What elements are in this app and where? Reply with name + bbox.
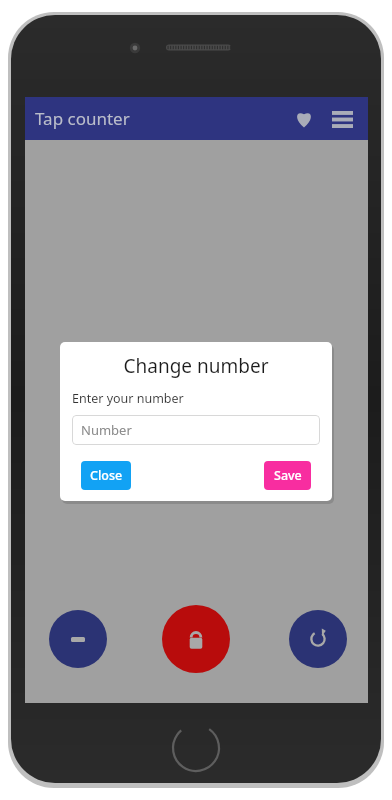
button[interactable]: Save bbox=[264, 461, 311, 490]
button[interactable]: Menu bbox=[324, 101, 360, 137]
button[interactable]: Reset bbox=[289, 610, 347, 668]
staticText: Enter your number bbox=[72, 390, 184, 407]
button[interactable]: Favorite bbox=[286, 101, 322, 137]
staticText: Change number bbox=[60, 353, 332, 379]
staticText: Tap counter bbox=[35, 107, 130, 130]
button[interactable]: Lock bbox=[162, 605, 230, 673]
staticText: Number bbox=[81, 421, 132, 439]
button[interactable]: Number bbox=[72, 415, 320, 445]
button[interactable]: Close bbox=[81, 461, 131, 490]
staticText: Save bbox=[274, 467, 302, 484]
button[interactable]: Decrease bbox=[49, 610, 107, 668]
staticText: Close bbox=[90, 467, 123, 484]
